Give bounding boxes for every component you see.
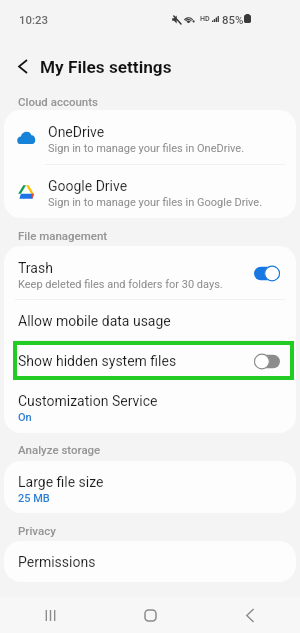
staticText: Cloud accounts [18,95,98,108]
button[interactable]: Customization Service [4,380,296,433]
button[interactable]: Permissions [4,541,296,582]
button[interactable]: Google Drive [4,164,296,218]
staticText: Sign in to manage your files in OneDrive… [48,142,245,155]
staticText: Allow mobile data usage [18,313,171,329]
button[interactable]: Allow mobile data usage [4,300,296,341]
staticText: Analyze storage [18,443,101,456]
staticText: Show hidden system files [18,353,177,369]
button[interactable]: Large file size [4,461,296,513]
button[interactable]: On [252,263,282,283]
staticText: Large file size [18,474,104,490]
button[interactable]: Trash [4,246,296,300]
button[interactable]: OneDrive [4,110,296,164]
staticText: On [18,411,32,424]
staticText: Customization Service [18,393,158,409]
staticText: File management [18,229,108,242]
staticText: Sign in to manage your files in Google D… [48,196,263,209]
staticText: 25 MB [18,492,50,505]
staticText: HD [200,14,210,22]
button[interactable]: Show hidden system files [4,341,296,380]
staticText: Trash [18,260,53,276]
staticText: OneDrive [48,124,105,140]
button[interactable]: Recent apps [0,597,100,633]
staticText: Permissions [18,554,96,570]
button[interactable]: Off [252,351,282,371]
staticText: Keep deleted files and folders for 30 da… [18,278,223,291]
staticText: My Files settings [40,57,172,77]
button[interactable]: Navigate up [10,53,36,79]
button[interactable]: Back [200,597,300,633]
staticText: 85% [222,13,244,26]
button[interactable]: Home [100,597,200,633]
staticText: Google Drive [48,178,128,194]
staticText: 10:23 [19,13,48,26]
staticText: Privacy [18,524,56,537]
